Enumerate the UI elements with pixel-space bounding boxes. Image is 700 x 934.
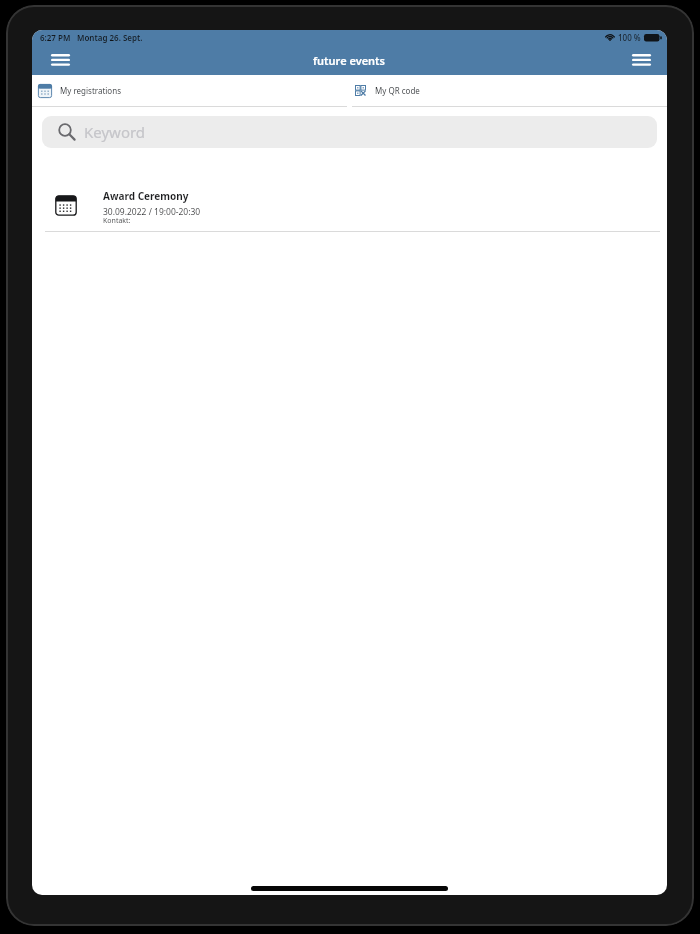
- button[interactable]: My QR code: [349, 75, 667, 106]
- staticText: future events: [313, 53, 386, 68]
- button[interactable]: [629, 48, 653, 72]
- button[interactable]: Award Ceremony: [32, 189, 667, 228]
- staticText: Award Ceremony: [103, 189, 189, 203]
- staticText: 30.09.2022 / 19:00-20:30: [103, 206, 201, 218]
- staticText: 100 %: [618, 32, 641, 43]
- staticText: Keyword: [84, 122, 146, 142]
- staticText: Kontakt:: [103, 216, 131, 226]
- staticText: Montag 26. Sept.: [77, 32, 143, 43]
- button[interactable]: Keyword: [42, 116, 657, 148]
- button[interactable]: My registrations: [32, 75, 349, 106]
- staticText: My registrations: [60, 85, 121, 96]
- staticText: 6:27 PM: [40, 32, 71, 43]
- button[interactable]: [48, 48, 72, 72]
- staticText: My QR code: [375, 85, 420, 96]
